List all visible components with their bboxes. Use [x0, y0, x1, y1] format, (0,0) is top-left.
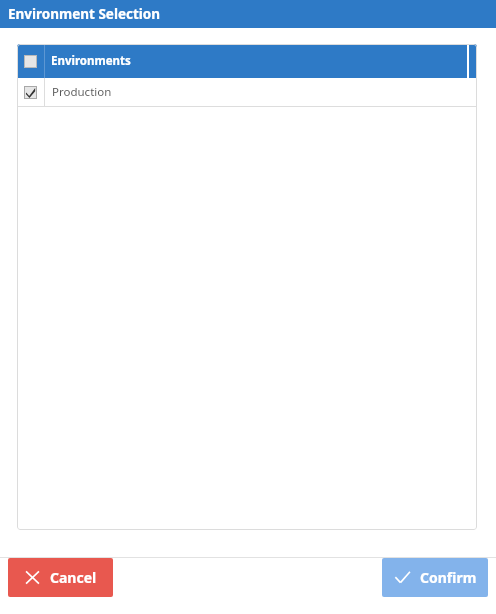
staticText: Cancel: [50, 568, 97, 587]
button[interactable]: Select all environments: [17, 44, 44, 78]
button[interactable]: Confirm: [382, 558, 488, 597]
staticText: Confirm: [420, 568, 477, 587]
staticText: Production: [52, 84, 112, 100]
staticText: Environments: [51, 53, 131, 69]
staticText: Environment Selection: [8, 5, 161, 23]
button[interactable]: Environments: [45, 44, 467, 78]
button[interactable]: Cancel: [8, 558, 113, 597]
button[interactable]: Production: [17, 78, 477, 106]
